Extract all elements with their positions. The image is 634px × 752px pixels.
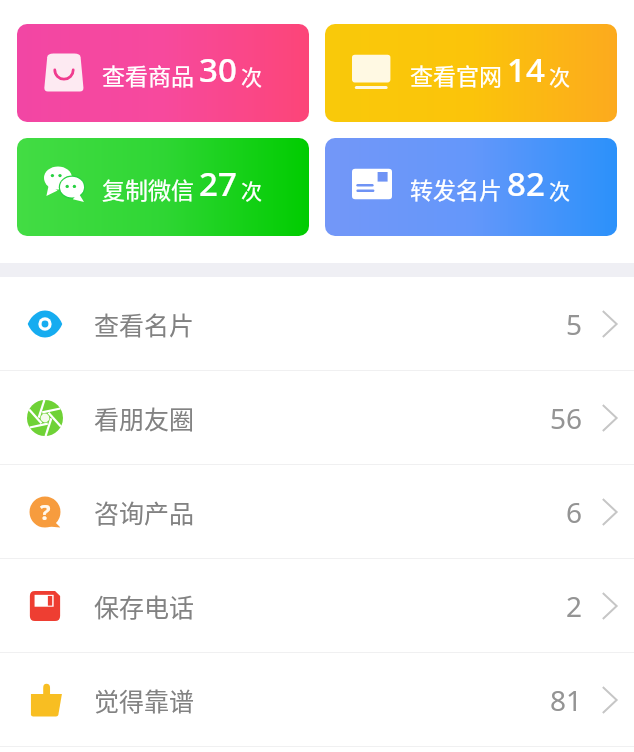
staticText: 复制微信 xyxy=(102,172,194,205)
button[interactable]: 查看名片 xyxy=(0,277,634,370)
staticText: 30 xyxy=(199,47,237,92)
button[interactable]: ? xyxy=(0,465,634,558)
button[interactable]: 转发名片 82 次 xyxy=(325,138,617,236)
staticText: 56 xyxy=(550,399,583,437)
staticText: 次 xyxy=(241,175,262,205)
staticText: 次 xyxy=(549,175,570,205)
staticText: 保存电话 xyxy=(94,588,195,624)
staticText: 觉得靠谱 xyxy=(94,682,195,718)
staticText: 82 xyxy=(507,161,545,206)
button[interactable]: 觉得靠谱 xyxy=(0,653,634,746)
staticText: 6 xyxy=(566,493,583,531)
button[interactable]: 复制微信 27 次 xyxy=(17,138,309,236)
staticText: 81 xyxy=(550,681,583,719)
staticText: 查看名片 xyxy=(94,306,195,342)
staticText: 2 xyxy=(566,587,583,625)
staticText: 转发名片 xyxy=(410,172,502,205)
staticText: 咨询产品 xyxy=(94,494,195,530)
staticText: 看朋友圈 xyxy=(94,400,195,436)
staticText: 查看官网 xyxy=(410,58,502,91)
button[interactable]: 保存电话 xyxy=(0,559,634,652)
staticText: 次 xyxy=(549,61,570,91)
staticText: 次 xyxy=(241,61,262,91)
staticText: 14 xyxy=(507,47,545,92)
staticText: 查看商品 xyxy=(102,58,194,91)
button[interactable]: 查看商品 30 次 xyxy=(17,24,309,122)
button[interactable]: 看朋友圈 xyxy=(0,371,634,464)
staticText: ? xyxy=(40,496,51,526)
staticText: 5 xyxy=(566,305,583,343)
staticText: 27 xyxy=(199,161,237,206)
button[interactable]: 查看官网 14 次 xyxy=(325,24,617,122)
